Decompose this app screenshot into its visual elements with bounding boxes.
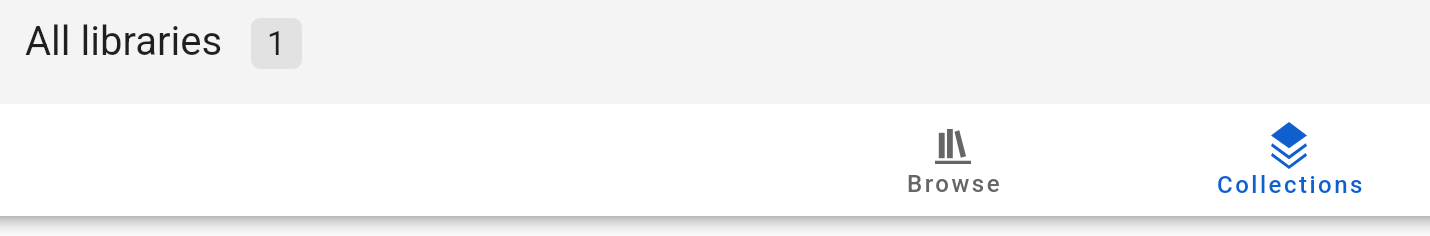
staticText: Browse <box>907 170 1002 198</box>
button[interactable]: 1 <box>251 18 302 69</box>
staticText: 1 <box>267 24 286 63</box>
other: Browse <box>935 129 971 164</box>
button[interactable]: Collections <box>1191 104 1391 216</box>
other: Collections <box>1271 122 1307 169</box>
staticText: Collections <box>1217 171 1365 199</box>
button[interactable]: Browse <box>854 104 1054 216</box>
staticText: All libraries <box>25 18 223 65</box>
